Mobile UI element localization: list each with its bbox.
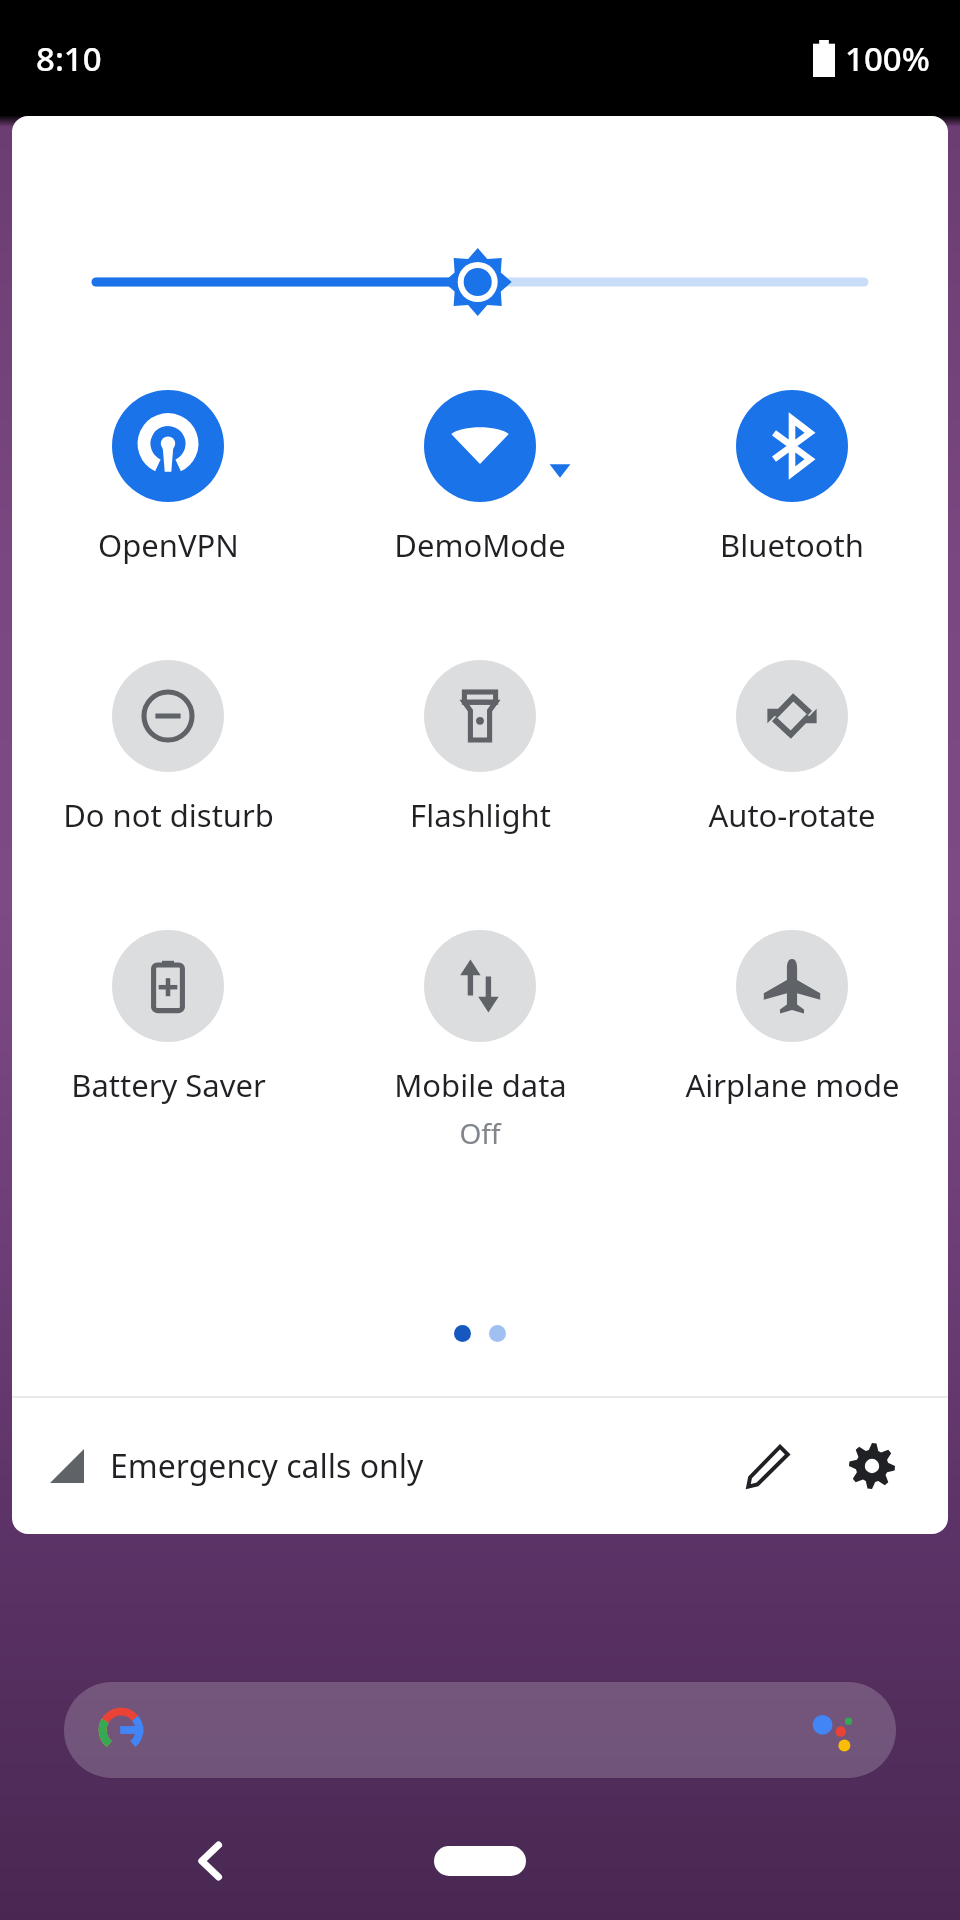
staticText: 8:10 <box>36 36 102 81</box>
button[interactable]: OpenVPN <box>12 390 324 566</box>
staticText: Battery Saver <box>71 1064 266 1106</box>
button[interactable]: Battery Saver <box>12 930 324 1106</box>
button[interactable]: Settings <box>834 1428 910 1504</box>
staticText: Auto-rotate <box>708 794 876 836</box>
staticText: Do not disturb <box>63 794 274 836</box>
button[interactable]: Search <box>64 1682 896 1778</box>
staticText: Mobile data <box>394 1064 567 1106</box>
button[interactable]: Bluetooth <box>636 390 948 566</box>
staticText: Off <box>459 1114 501 1152</box>
button[interactable]: Airplane mode <box>636 930 948 1106</box>
button[interactable]: Auto-rotate <box>636 660 948 836</box>
button[interactable]: Back <box>168 1818 254 1904</box>
button[interactable]: Mobile data <box>324 930 636 1152</box>
staticText: Bluetooth <box>720 524 864 566</box>
staticText: 100% <box>845 36 930 81</box>
staticText: Airplane mode <box>685 1064 900 1106</box>
staticText: OpenVPN <box>98 524 239 566</box>
button[interactable]: Do not disturb <box>12 660 324 836</box>
button[interactable]: DemoMode <box>324 390 636 566</box>
staticText: DemoMode <box>394 524 566 566</box>
staticText: Emergency calls only <box>110 1444 424 1488</box>
button[interactable]: Home <box>434 1846 526 1876</box>
button[interactable]: Edit tiles <box>730 1428 806 1504</box>
button[interactable]: Flashlight <box>324 660 636 836</box>
staticText: Flashlight <box>410 794 551 836</box>
button[interactable]: Brightness <box>96 244 864 320</box>
